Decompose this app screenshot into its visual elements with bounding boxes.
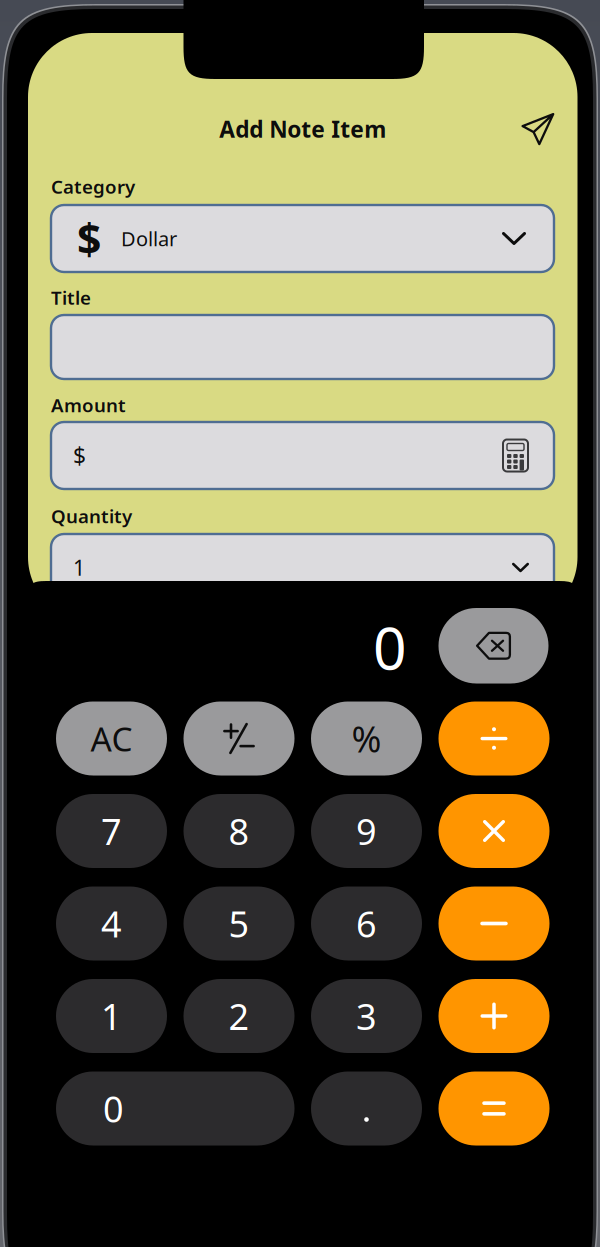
staticText: 2 [228, 992, 249, 1040]
staticText: $ [77, 210, 101, 267]
button[interactable]: 2 [183, 979, 294, 1053]
button[interactable]: $ [51, 422, 554, 489]
staticText: $ [73, 440, 86, 470]
button[interactable]: % [311, 701, 422, 775]
button[interactable]: 4 [56, 886, 167, 960]
staticText: Dollar [121, 225, 177, 252]
button[interactable]: 0 [56, 1071, 294, 1145]
button[interactable]: Divide [438, 701, 549, 775]
button[interactable]: 9 [311, 794, 422, 868]
staticText: Amount [51, 393, 126, 417]
staticText: AC [90, 716, 132, 761]
button[interactable]: 7 [56, 794, 167, 868]
button[interactable]: 8 [183, 794, 294, 868]
staticText: Title [51, 285, 91, 310]
button[interactable]: 3 [311, 979, 422, 1053]
staticText: 1 [101, 992, 122, 1040]
staticText: 5 [228, 900, 249, 947]
staticText: Category [51, 174, 135, 199]
button[interactable]: 6 [311, 886, 422, 960]
staticText: 1 [73, 553, 85, 582]
button[interactable]: Multiply [438, 794, 549, 868]
button[interactable]: 1 [56, 979, 167, 1053]
button[interactable]: $ [51, 205, 554, 272]
button[interactable]: Add [438, 979, 549, 1053]
button[interactable]: Subtract [438, 886, 549, 960]
staticText: 8 [228, 807, 249, 855]
staticText: 4 [101, 900, 122, 947]
staticText: 7 [101, 807, 122, 855]
staticText: 0 [373, 608, 407, 686]
staticText: 9 [356, 807, 377, 855]
button[interactable]: Equals [438, 1071, 549, 1145]
button[interactable]: Title [51, 315, 554, 379]
staticText: 6 [356, 900, 377, 947]
button[interactable]: AC [56, 701, 167, 775]
staticText: Quantity [51, 504, 132, 528]
button[interactable]: Send [521, 112, 555, 145]
button[interactable]: 5 [183, 886, 294, 960]
staticText: % [351, 715, 381, 762]
button[interactable]: Delete [438, 608, 548, 683]
staticText: 0 [103, 1085, 124, 1132]
staticText: Add Note Item [219, 114, 386, 144]
button[interactable]: 1 [51, 534, 554, 601]
button[interactable]: Decimal point [311, 1071, 422, 1145]
staticText: 3 [356, 992, 377, 1040]
button[interactable]: Toggle sign [183, 701, 294, 775]
